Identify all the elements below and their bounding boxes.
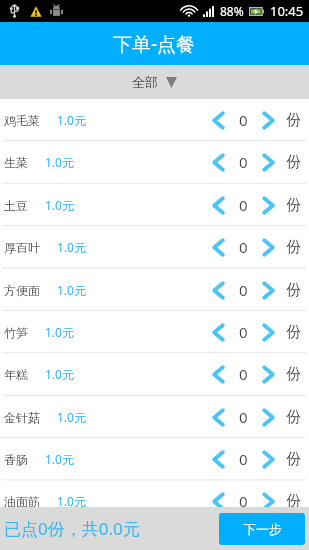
staticText: 已点0份，共0.0元 [4, 517, 140, 540]
button[interactable]: Increase quantity [255, 353, 281, 395]
staticText: 1.0元 [57, 409, 86, 425]
button[interactable]: 年糕 [0, 353, 309, 395]
button[interactable]: Decrease quantity [205, 480, 231, 522]
button[interactable]: Decrease quantity [205, 353, 231, 395]
staticText: 下一步 [243, 521, 282, 537]
staticText: 香肠 [4, 452, 28, 467]
button[interactable]: 土豆 [0, 184, 309, 226]
button[interactable]: Decrease quantity [205, 226, 231, 268]
staticText: 0 [239, 110, 248, 130]
staticText: 0 [239, 407, 248, 427]
staticText: 0 [239, 195, 248, 215]
staticText: 份 [286, 408, 301, 427]
button[interactable]: Increase quantity [255, 480, 281, 522]
staticText: 1.0元 [45, 451, 74, 467]
staticText: 生菜 [4, 155, 28, 170]
staticText: 1.0元 [45, 324, 74, 340]
staticText: 鸡毛菜 [4, 113, 40, 128]
staticText: 下单-点餐 [113, 31, 196, 57]
button[interactable]: Increase quantity [255, 311, 281, 353]
staticText: 1.0元 [45, 366, 74, 382]
button[interactable]: 鸡毛菜 [0, 99, 309, 141]
staticText: 0 [239, 491, 248, 511]
staticText: 土豆 [4, 198, 28, 213]
staticText: 1.0元 [57, 493, 86, 509]
button[interactable]: Increase quantity [255, 226, 281, 268]
button[interactable]: Increase quantity [255, 269, 281, 311]
button[interactable]: Increase quantity [255, 396, 281, 438]
staticText: 0 [239, 449, 248, 469]
button[interactable]: Decrease quantity [205, 311, 231, 353]
button[interactable]: 金针菇 [0, 396, 309, 438]
staticText: 份 [286, 323, 301, 342]
button[interactable]: 香肠 [0, 438, 309, 480]
button[interactable]: Decrease quantity [205, 396, 231, 438]
staticText: 方便面 [4, 283, 40, 298]
staticText: 0 [239, 237, 248, 257]
staticText: 1.0元 [57, 112, 86, 128]
button[interactable]: 厚百叶 [0, 226, 309, 268]
staticText: 份 [286, 196, 301, 215]
staticText: 份 [286, 153, 301, 172]
button[interactable]: 全部 [0, 65, 309, 99]
staticText: 金针菇 [4, 410, 40, 425]
staticText: 厚百叶 [4, 240, 40, 255]
button[interactable]: 油面筋 [0, 480, 309, 522]
staticText: 0 [239, 280, 248, 300]
button[interactable]: Increase quantity [255, 99, 281, 141]
button[interactable]: Decrease quantity [205, 438, 231, 480]
button[interactable]: Decrease quantity [205, 269, 231, 311]
button[interactable]: Increase quantity [255, 438, 281, 480]
staticText: 油面筋 [4, 494, 40, 509]
button[interactable]: Decrease quantity [205, 141, 231, 183]
staticText: 份 [286, 111, 301, 130]
staticText: 份 [286, 365, 301, 384]
staticText: 10:45 [270, 2, 304, 20]
staticText: 全部 [132, 74, 158, 90]
staticText: 0 [239, 152, 248, 172]
staticText: 1.0元 [45, 197, 74, 213]
staticText: 1.0元 [45, 154, 74, 170]
staticText: 份 [286, 281, 301, 300]
button[interactable]: 生菜 [0, 141, 309, 183]
staticText: 份 [286, 450, 301, 469]
button[interactable]: 下一步 [219, 513, 305, 545]
staticText: 88% [220, 3, 244, 19]
staticText: 1.0元 [57, 282, 86, 298]
staticText: 0 [239, 322, 248, 342]
staticText: 1.0元 [57, 239, 86, 255]
button[interactable]: Decrease quantity [205, 184, 231, 226]
button[interactable]: 方便面 [0, 269, 309, 311]
button[interactable]: Increase quantity [255, 184, 281, 226]
staticText: 年糕 [4, 367, 28, 382]
staticText: 0 [239, 364, 248, 384]
staticText: 竹笋 [4, 325, 28, 340]
button[interactable]: Decrease quantity [205, 99, 231, 141]
staticText: 份 [286, 238, 301, 257]
button[interactable]: Increase quantity [255, 141, 281, 183]
staticText: 份 [286, 492, 301, 511]
button[interactable]: 竹笋 [0, 311, 309, 353]
